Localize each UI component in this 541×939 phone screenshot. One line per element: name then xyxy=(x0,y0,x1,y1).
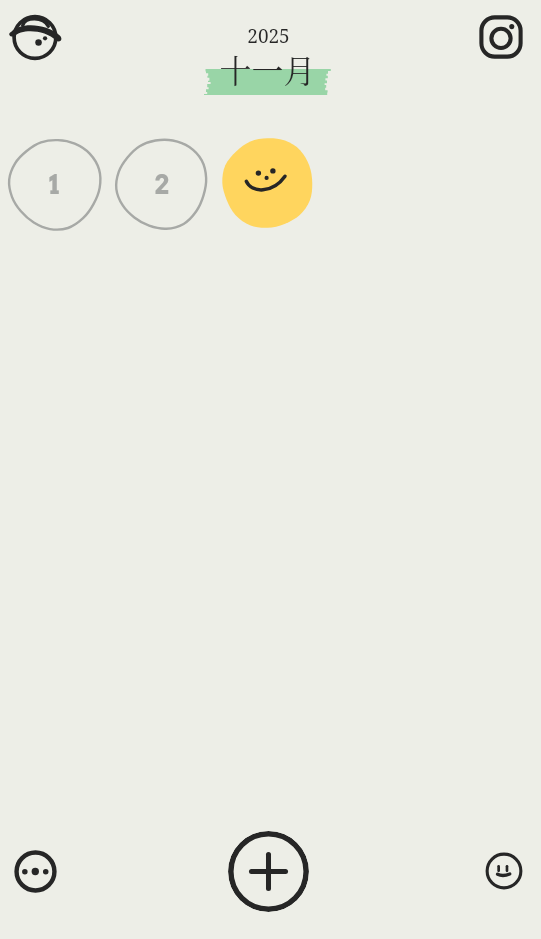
button[interactable]: More options xyxy=(14,850,57,893)
button[interactable]: Today, 3 November xyxy=(222,139,314,227)
button[interactable]: 1 xyxy=(8,138,100,230)
button[interactable]: Camera xyxy=(473,9,529,65)
staticText: 2 xyxy=(154,169,169,200)
button[interactable]: Profile xyxy=(8,8,65,65)
staticText: 2025 xyxy=(0,23,539,49)
button[interactable]: Add entry xyxy=(228,831,309,912)
staticText: 十一月 xyxy=(0,46,538,92)
button[interactable]: 2 xyxy=(115,138,207,230)
staticText: 1 xyxy=(49,169,60,200)
button[interactable]: Mood xyxy=(486,853,522,889)
